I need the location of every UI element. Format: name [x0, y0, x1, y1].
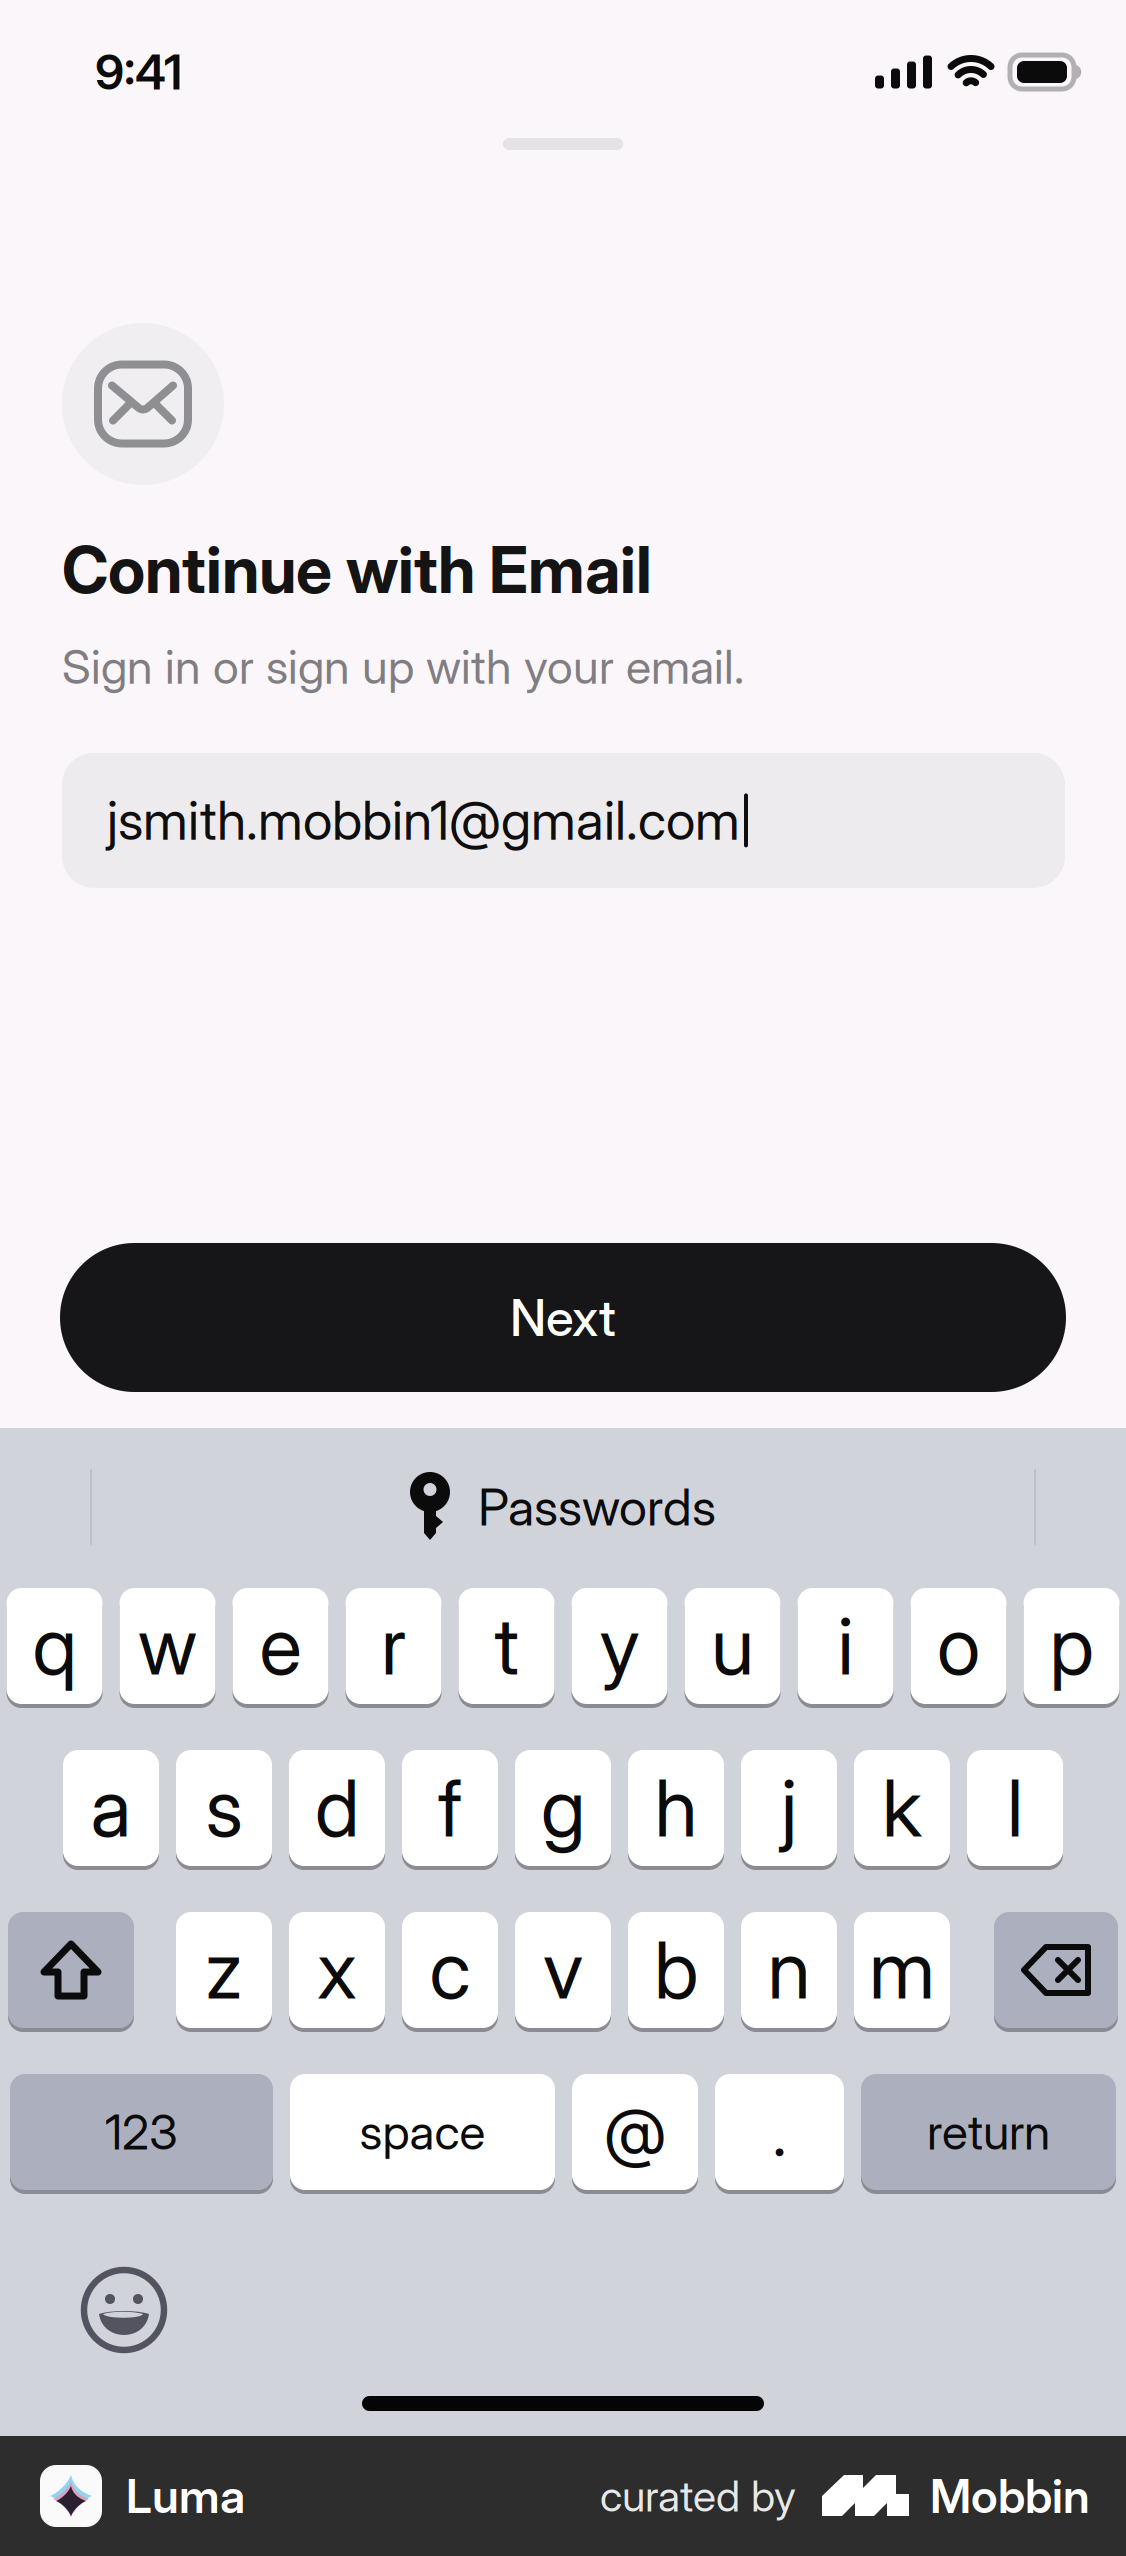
staticText: c	[429, 1922, 470, 2018]
staticText: w	[138, 1598, 197, 1694]
staticText: curated by	[600, 2470, 796, 2522]
staticText: Sign in or sign up with your email.	[62, 638, 744, 695]
staticText: Passwords	[478, 1476, 716, 1538]
button[interactable]: b	[628, 1910, 724, 2030]
staticText: l	[1007, 1760, 1023, 1856]
button[interactable]: h	[628, 1748, 724, 1868]
button[interactable]: t	[458, 1586, 554, 1706]
button[interactable]: v	[515, 1910, 611, 2030]
staticText: t	[494, 1598, 518, 1694]
staticText: r	[381, 1598, 406, 1694]
staticText: g	[541, 1760, 585, 1856]
button[interactable]: i	[797, 1586, 893, 1706]
button[interactable]: Next	[60, 1243, 1066, 1392]
button[interactable]: s	[176, 1748, 272, 1868]
button[interactable]: n	[741, 1910, 837, 2030]
staticText: m	[869, 1922, 935, 2018]
button[interactable]: p	[1023, 1586, 1119, 1706]
button[interactable]: Delete	[994, 1910, 1118, 2030]
button[interactable]: m	[854, 1910, 950, 2030]
staticText: @	[604, 2093, 666, 2171]
staticText: d	[315, 1760, 359, 1856]
button[interactable]: j	[741, 1748, 837, 1868]
staticText: Next	[510, 1287, 616, 1348]
button[interactable]: x	[289, 1910, 385, 2030]
button[interactable]: q	[6, 1586, 102, 1706]
button[interactable]: w	[119, 1586, 215, 1706]
button[interactable]: z	[176, 1910, 272, 2030]
staticText: o	[937, 1598, 980, 1694]
staticText: k	[882, 1760, 922, 1856]
staticText: Luma	[126, 2468, 245, 2524]
button[interactable]: y	[571, 1586, 667, 1706]
button[interactable]: d	[289, 1748, 385, 1868]
button[interactable]: a	[63, 1748, 159, 1868]
staticText: .	[772, 2093, 786, 2171]
button[interactable]: g	[515, 1748, 611, 1868]
staticText: p	[1049, 1598, 1093, 1694]
staticText: 9:41	[95, 43, 182, 101]
staticText: 123	[105, 2103, 178, 2161]
staticText: space	[359, 2103, 485, 2161]
staticText: a	[90, 1760, 131, 1856]
button[interactable]: Passwords	[410, 1472, 716, 1542]
staticText: e	[259, 1598, 301, 1694]
button[interactable]: @	[572, 2072, 698, 2192]
button[interactable]: k	[854, 1748, 950, 1868]
button[interactable]: o	[910, 1586, 1006, 1706]
button[interactable]: return	[861, 2072, 1116, 2192]
staticText: Mobbin	[930, 2468, 1090, 2524]
button[interactable]: Shift	[8, 1910, 134, 2030]
staticText: u	[711, 1598, 754, 1694]
staticText: s	[205, 1760, 242, 1856]
staticText: n	[767, 1922, 810, 2018]
staticText: f	[438, 1760, 462, 1856]
staticText: b	[654, 1922, 698, 2018]
button[interactable]: c	[402, 1910, 498, 2030]
staticText: q	[32, 1598, 76, 1694]
staticText: jsmith.mobbin1@gmail.com	[107, 788, 740, 853]
button[interactable]: e	[232, 1586, 328, 1706]
button[interactable]: u	[684, 1586, 780, 1706]
button[interactable]: r	[345, 1586, 441, 1706]
button[interactable]: space	[290, 2072, 555, 2192]
button[interactable]: .	[715, 2072, 844, 2192]
button[interactable]: f	[402, 1748, 498, 1868]
staticText: v	[543, 1922, 583, 2018]
staticText: y	[599, 1598, 639, 1694]
staticText: Continue with Email	[62, 531, 652, 608]
button[interactable]: 123	[10, 2072, 273, 2192]
staticText: i	[837, 1598, 853, 1694]
staticText: z	[205, 1922, 243, 2018]
staticText: return	[927, 2103, 1050, 2161]
button[interactable]: l	[967, 1748, 1063, 1868]
staticText: x	[317, 1922, 357, 2018]
staticText: h	[654, 1760, 697, 1856]
button[interactable]: Emoji keyboard	[84, 2270, 164, 2350]
staticText: j	[781, 1760, 797, 1856]
